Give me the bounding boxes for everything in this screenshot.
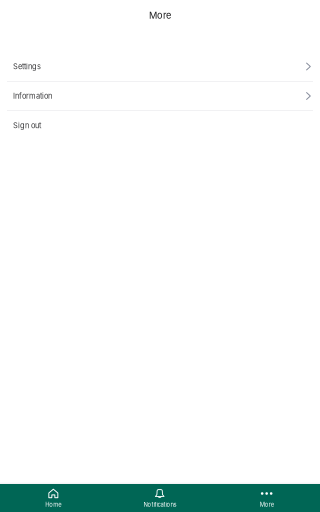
button[interactable]: More	[213, 484, 320, 512]
staticText: Information	[13, 91, 52, 100]
staticText: Settings	[13, 62, 41, 71]
staticText: Notifications	[143, 501, 176, 508]
staticText: Home	[45, 501, 61, 508]
staticText: Sign out	[13, 121, 41, 130]
staticText: More	[149, 10, 171, 21]
staticText: More	[260, 501, 274, 508]
button[interactable]: Home	[0, 484, 107, 512]
button[interactable]: Information	[0, 82, 320, 110]
button[interactable]: Settings	[0, 52, 320, 81]
button[interactable]: Notifications	[107, 484, 213, 512]
button[interactable]: Sign out	[0, 111, 320, 140]
